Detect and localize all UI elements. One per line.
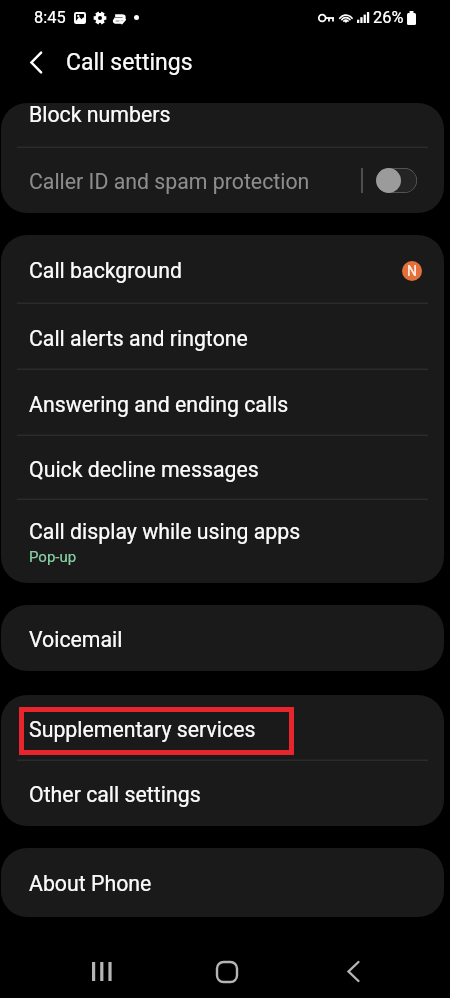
button[interactable]: Caller ID and spam protection toggle — [376, 168, 417, 193]
staticText: Pop-up — [29, 548, 77, 566]
staticText: About Phone — [29, 871, 152, 896]
staticText: 26% — [373, 8, 404, 27]
button[interactable]: Call display while using apps — [1, 500, 444, 583]
button[interactable]: Recent apps — [77, 947, 125, 995]
button[interactable]: Navigate up — [14, 40, 58, 84]
button[interactable]: About Phone — [1, 848, 444, 917]
button[interactable]: Supplementary services — [1, 695, 444, 761]
staticText: Voicemail — [29, 627, 123, 652]
staticText: Answering and ending calls — [29, 392, 289, 417]
button[interactable]: Voicemail — [1, 605, 444, 671]
button[interactable]: Call alerts and ringtone — [1, 304, 444, 370]
staticText: N — [407, 263, 417, 279]
staticText: Call alerts and ringtone — [29, 326, 248, 351]
staticText: Caller ID and spam protection — [29, 169, 310, 194]
staticText: Call settings — [66, 49, 193, 76]
button[interactable]: Quick decline messages — [1, 436, 444, 500]
staticText: Call display while using apps — [29, 519, 301, 544]
button[interactable]: Answering and ending calls — [1, 370, 444, 436]
staticText: Supplementary services — [29, 717, 256, 742]
button[interactable]: Other call settings — [1, 761, 444, 826]
button[interactable]: Home — [203, 948, 251, 996]
staticText: Call background — [29, 258, 182, 283]
staticText: Block numbers — [29, 103, 171, 127]
staticText: 8:45 — [34, 8, 66, 27]
button[interactable]: Caller ID and spam protection — [1, 147, 444, 213]
button[interactable]: Back — [329, 947, 377, 995]
button[interactable]: Block numbers — [1, 103, 444, 148]
staticText: Quick decline messages — [29, 457, 259, 482]
button[interactable]: Call background — [1, 235, 444, 304]
staticText: Other call settings — [29, 782, 201, 807]
